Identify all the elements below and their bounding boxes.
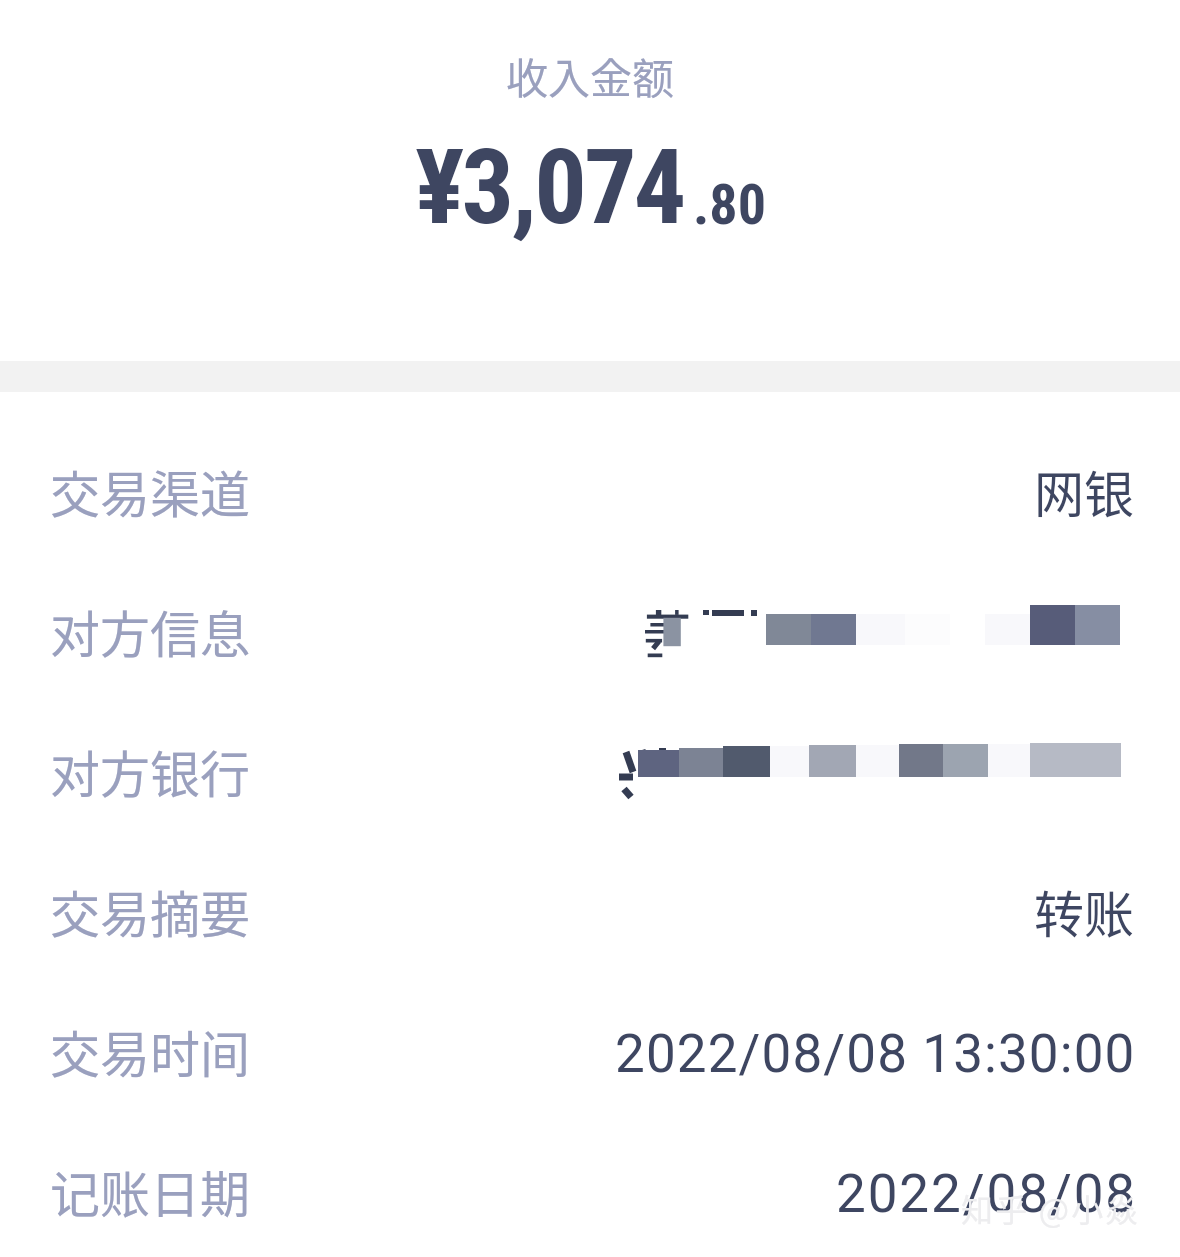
staticText: 交易时间 [50, 1015, 250, 1087]
button[interactable]: 对方信息 [0, 595, 1180, 735]
button[interactable]: 交易时间 [0, 1015, 1180, 1155]
staticText: 网银 [1034, 455, 1134, 527]
staticText: ¥3,074 [415, 127, 684, 249]
staticText: 对方银行 [50, 735, 250, 807]
staticText: 2022/08/08 13:30:00 [615, 1023, 1136, 1085]
staticText: 收入金额 [0, 45, 1180, 106]
button[interactable]: 交易渠道 [0, 455, 1180, 595]
staticText: 对方信息 [50, 595, 250, 667]
staticText: .80 [693, 172, 766, 238]
staticText: 交易渠道 [50, 455, 250, 527]
button[interactable]: 对方银行 [0, 735, 1180, 875]
button[interactable]: 记账日期 [0, 1155, 1180, 1257]
button[interactable]: 交易摘要 [0, 875, 1180, 1015]
staticText: 交易摘要 [50, 875, 250, 947]
staticText: 2022/08/08 [836, 1163, 1138, 1225]
staticText: 转账 [1034, 875, 1134, 947]
staticText: 记账日期 [50, 1155, 250, 1227]
staticText: 知乎 @小焱 [961, 1185, 1140, 1231]
